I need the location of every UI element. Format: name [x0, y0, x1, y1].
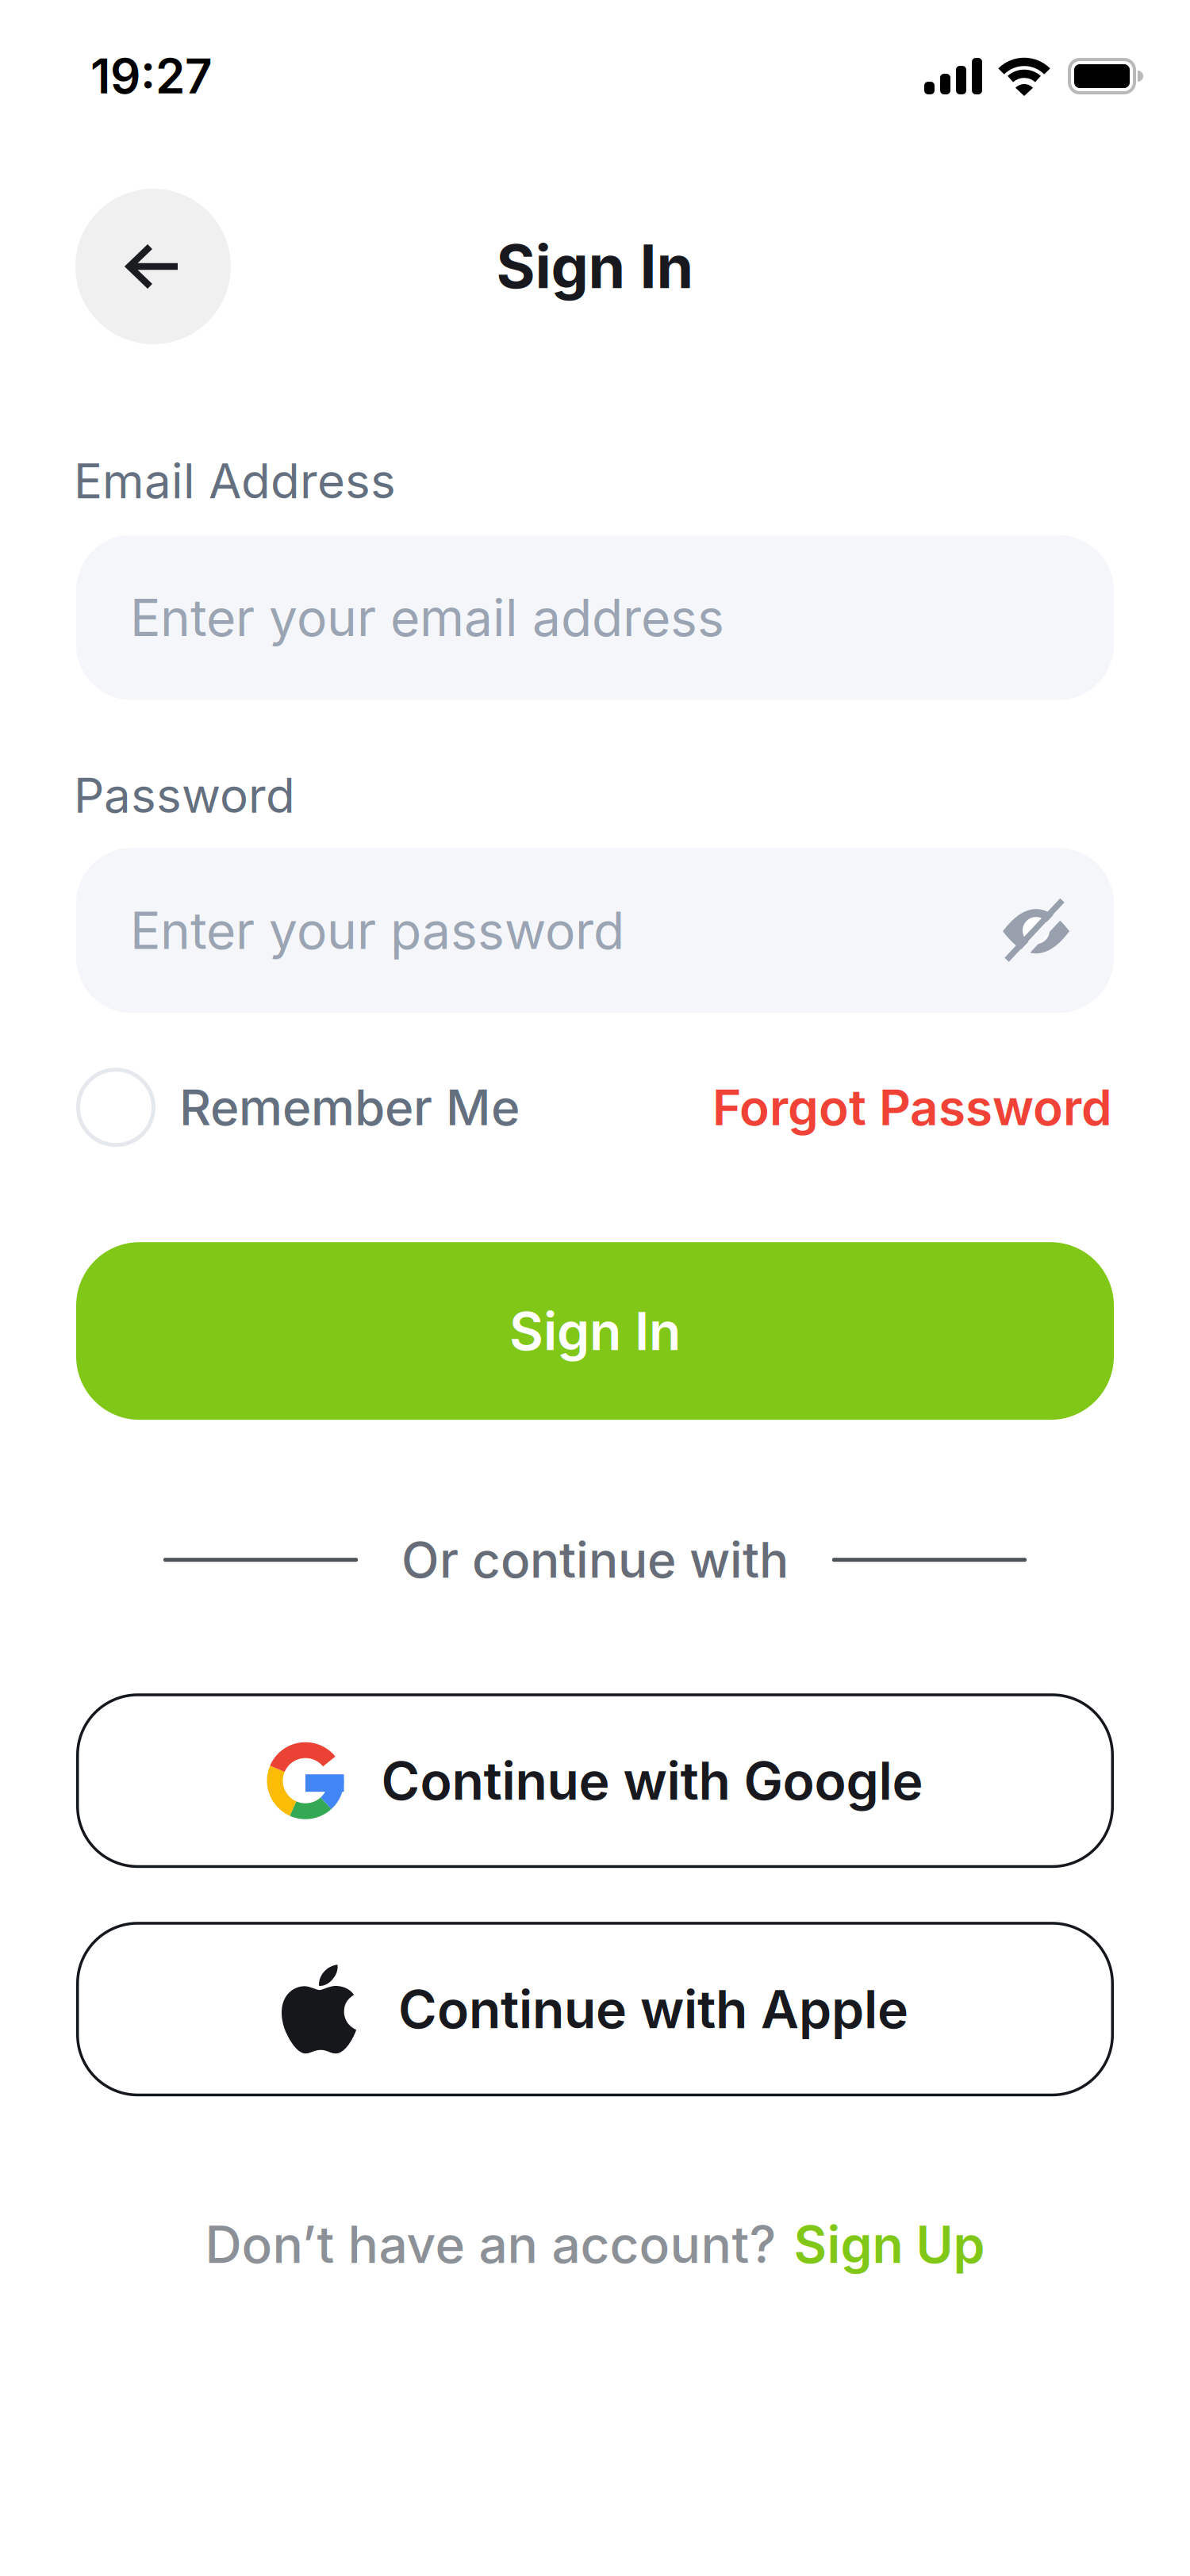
staticText: Enter your password — [130, 900, 624, 961]
staticText: Remember Me — [179, 1078, 520, 1137]
staticText: Email Address — [74, 452, 396, 510]
staticText: Enter your email address — [130, 587, 724, 648]
button[interactable]: Back — [75, 189, 231, 344]
button[interactable]: Sign In — [0, 1242, 1190, 1420]
staticText: Sign In — [509, 1299, 681, 1363]
staticText: Password — [74, 767, 295, 824]
staticText: Or continue with — [401, 1530, 789, 1590]
button[interactable]: Remember Me — [76, 1068, 520, 1147]
staticText: Sign Up — [794, 2214, 985, 2275]
staticText: Don’t have an account? — [205, 2214, 776, 2275]
staticText: Continue with Google — [381, 1749, 923, 1812]
staticText: Forgot Password — [712, 1078, 1112, 1137]
staticText: Sign In — [496, 230, 694, 302]
button[interactable]: Continue with Google — [0, 1693, 1190, 1868]
button[interactable]: Continue with Apple — [0, 1922, 1190, 2096]
button[interactable]: Sign Up — [205, 2214, 985, 2275]
staticText: Continue with Apple — [398, 1977, 908, 2041]
button[interactable]: Forgot Password — [712, 1078, 1112, 1137]
button[interactable]: Show password — [1000, 894, 1073, 967]
staticText: 19:27 — [90, 47, 213, 105]
